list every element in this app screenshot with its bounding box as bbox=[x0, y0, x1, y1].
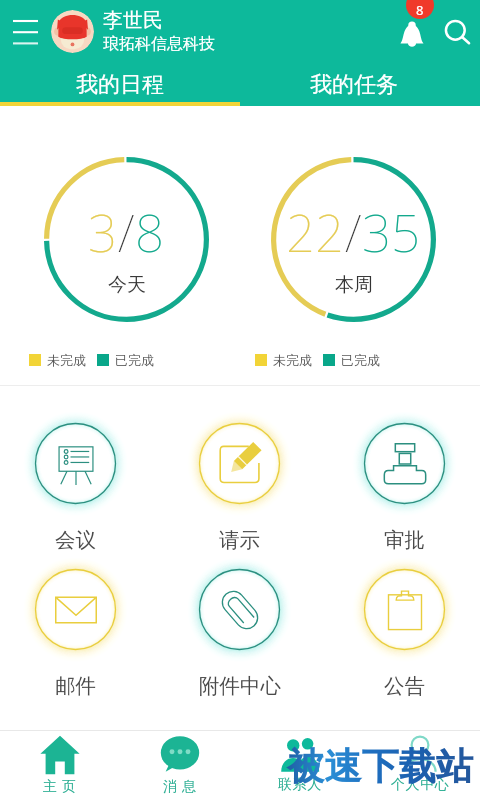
staticText: 个人中心 bbox=[391, 776, 450, 794]
button[interactable]: 我的日程 bbox=[0, 62, 240, 102]
staticText: 请示 bbox=[219, 527, 260, 553]
staticText: 未完成 bbox=[273, 352, 312, 368]
button[interactable]: Menu bbox=[0, 0, 51, 62]
staticText: / bbox=[345, 197, 362, 266]
button[interactable]: 我的任务 bbox=[240, 62, 480, 102]
button[interactable]: 公告 bbox=[362, 567, 447, 699]
staticText: 本周 bbox=[335, 273, 373, 297]
button[interactable]: Notifications bbox=[390, 0, 434, 62]
staticText: 22 bbox=[286, 197, 345, 266]
staticText: 邮件 bbox=[55, 673, 96, 699]
staticText: 琅拓科信息科技 bbox=[103, 34, 215, 54]
staticText: 公告 bbox=[384, 673, 425, 699]
staticText: 35 bbox=[362, 197, 421, 266]
button[interactable]: 主 页 bbox=[0, 731, 120, 800]
staticText: 我的日程 bbox=[76, 71, 164, 99]
button[interactable]: 联系人 bbox=[240, 731, 360, 800]
button[interactable]: 邮件 bbox=[33, 567, 118, 699]
staticText: 8 bbox=[416, 1, 424, 19]
staticText: 李世民 bbox=[103, 8, 163, 33]
staticText: 3 bbox=[88, 197, 118, 266]
button[interactable]: 附件中心 bbox=[197, 567, 282, 699]
staticText: 8 bbox=[135, 197, 165, 266]
staticText: / bbox=[118, 197, 135, 266]
button[interactable]: Search bbox=[434, 0, 480, 62]
staticText: 我的任务 bbox=[310, 71, 398, 99]
staticText: 会议 bbox=[55, 527, 96, 553]
staticText: 消 息 bbox=[163, 776, 197, 795]
staticText: 已完成 bbox=[341, 352, 380, 368]
staticText: 主 页 bbox=[43, 776, 77, 795]
staticText: 审批 bbox=[384, 527, 425, 553]
button[interactable]: 请示 bbox=[197, 421, 282, 553]
staticText: 未完成 bbox=[47, 352, 86, 368]
staticText: 被速下载站 bbox=[287, 743, 473, 790]
button[interactable]: 消 息 bbox=[120, 731, 240, 800]
staticText: 已完成 bbox=[115, 352, 154, 368]
button[interactable]: 会议 bbox=[33, 421, 118, 553]
staticText: 附件中心 bbox=[199, 673, 281, 699]
staticText: 今天 bbox=[108, 273, 146, 297]
staticText: 联系人 bbox=[278, 776, 322, 794]
button[interactable]: 审批 bbox=[362, 421, 447, 553]
button[interactable]: 个人中心 bbox=[360, 731, 480, 800]
